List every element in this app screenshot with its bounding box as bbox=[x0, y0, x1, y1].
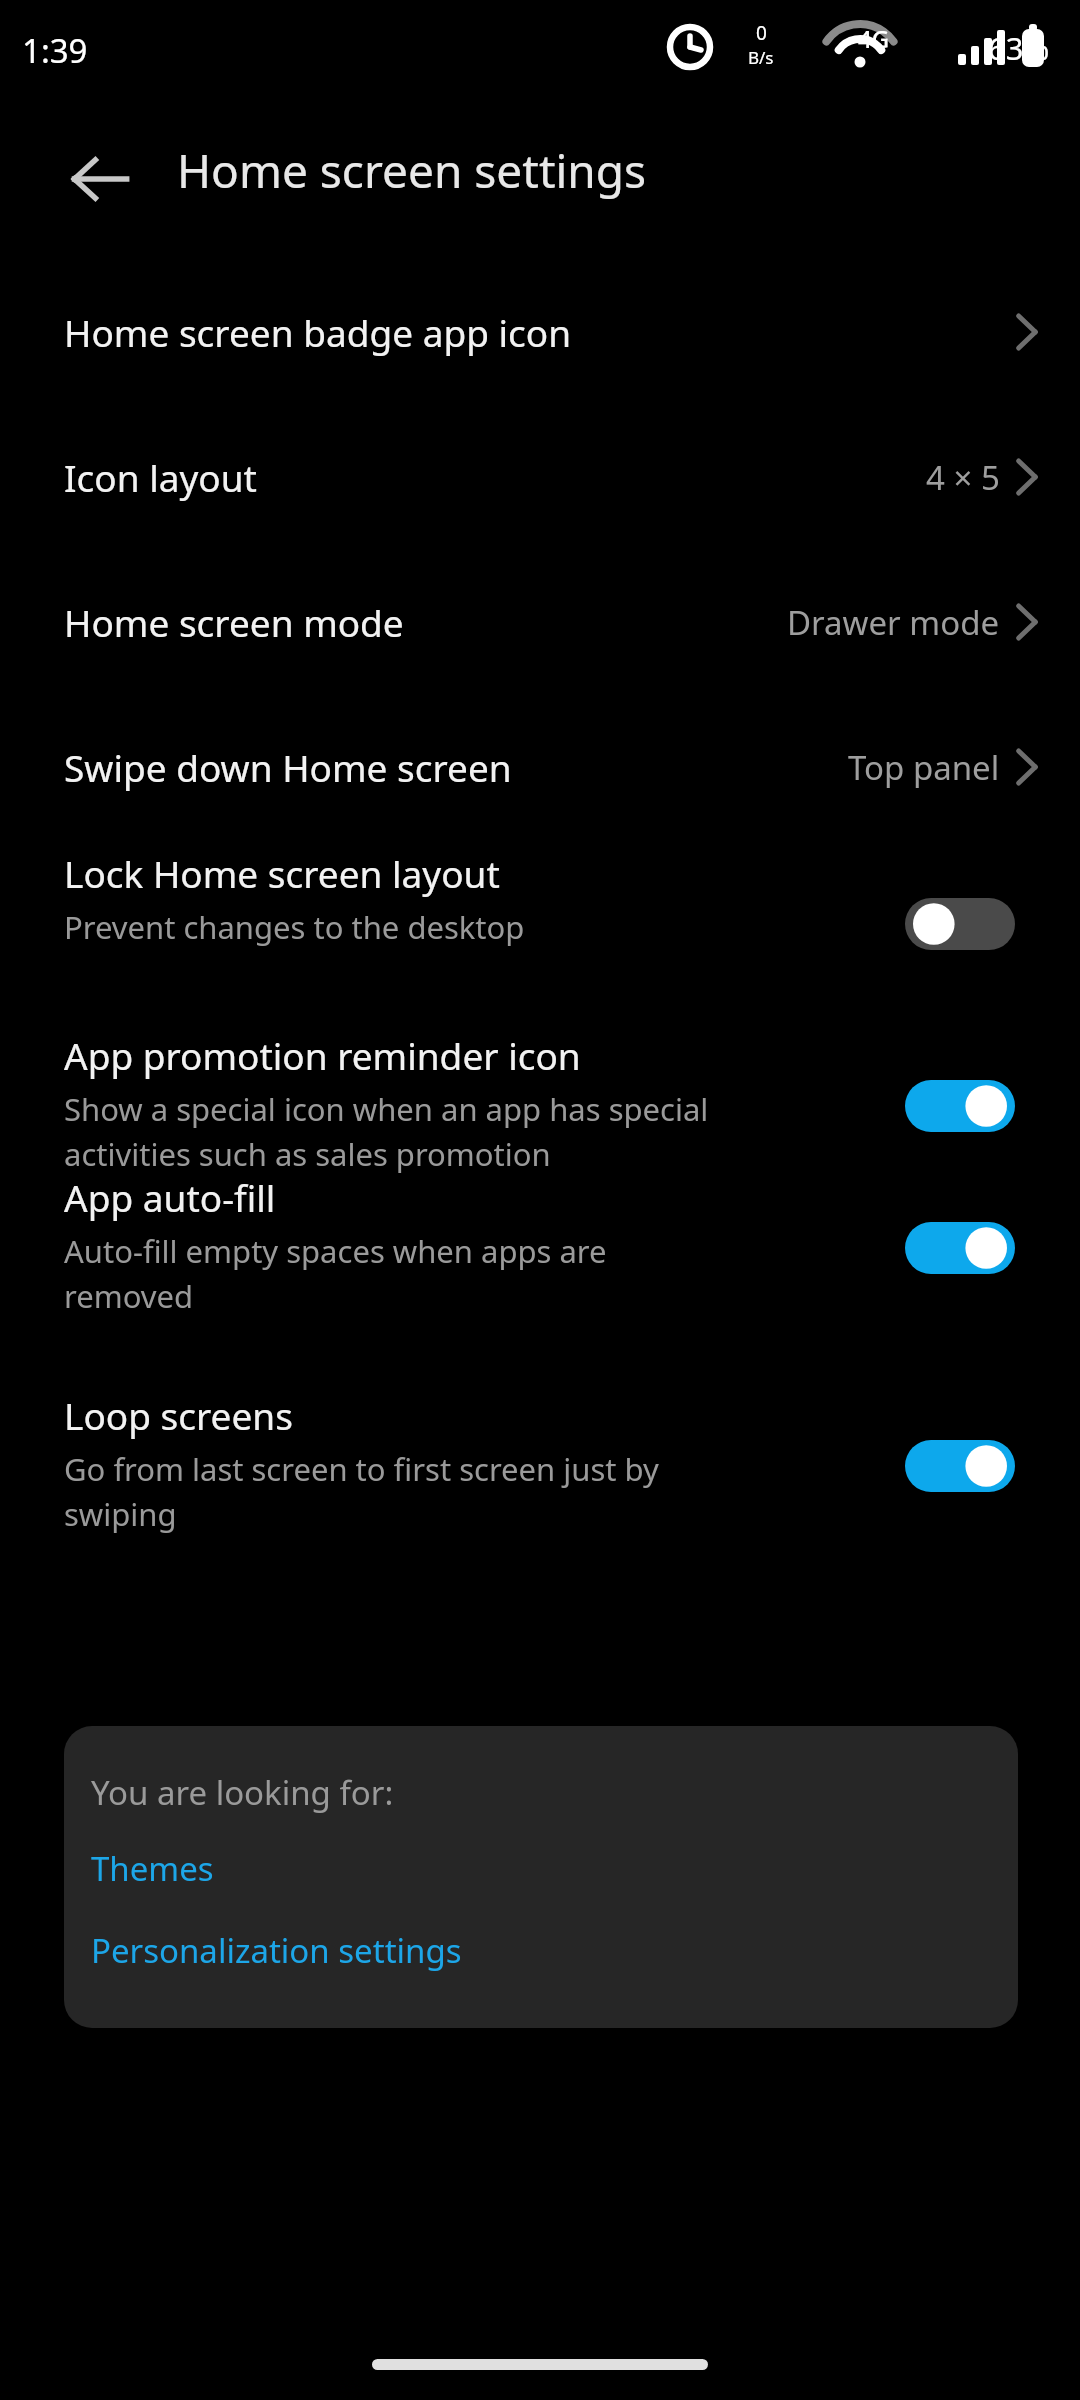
staticText: Prevent changes to the desktop bbox=[64, 906, 525, 948]
button[interactable]: Home screen mode bbox=[0, 567, 1080, 677]
staticText: Go from last screen to first screen just… bbox=[64, 1448, 659, 1535]
staticText: Swipe down Home screen bbox=[64, 742, 848, 792]
staticText: Loop screens bbox=[64, 1390, 293, 1440]
staticText: 4 × 5 bbox=[926, 455, 1000, 500]
staticText: Top panel bbox=[848, 745, 1000, 790]
button[interactable] bbox=[0, 1372, 1080, 1562]
button[interactable] bbox=[0, 1154, 1080, 1344]
staticText: Drawer mode bbox=[787, 600, 1000, 645]
staticText: Themes bbox=[91, 1846, 214, 1891]
staticText: 63% bbox=[988, 27, 1050, 69]
button[interactable]: On bbox=[905, 1222, 1015, 1274]
button[interactable]: Personalization settings bbox=[91, 1928, 462, 1973]
button[interactable]: Home screen badge app icon bbox=[0, 277, 1080, 387]
staticText: App auto-fill bbox=[64, 1172, 276, 1222]
button[interactable] bbox=[0, 1012, 1080, 1202]
staticText: Home screen badge app icon bbox=[64, 307, 1016, 357]
staticText: Home screen settings bbox=[177, 139, 647, 202]
staticText: 4G bbox=[858, 22, 890, 55]
button[interactable]: On bbox=[905, 1080, 1015, 1132]
staticText: Auto-fill empty spaces when apps are rem… bbox=[64, 1230, 607, 1317]
staticText: App promotion reminder icon bbox=[64, 1030, 581, 1080]
button[interactable]: Back bbox=[52, 131, 148, 227]
button[interactable]: Icon layout bbox=[0, 422, 1080, 532]
staticText: Icon layout bbox=[64, 452, 926, 502]
button[interactable]: Themes bbox=[91, 1846, 214, 1891]
staticText: 1:39 bbox=[22, 28, 88, 73]
button[interactable] bbox=[0, 830, 1080, 970]
button[interactable]: Off bbox=[905, 898, 1015, 950]
staticText: Lock Home screen layout bbox=[64, 848, 500, 898]
staticText: B/s bbox=[748, 46, 774, 69]
button[interactable]: Swipe down Home screen bbox=[0, 712, 1080, 822]
staticText: Home screen mode bbox=[64, 597, 787, 647]
staticText: Personalization settings bbox=[91, 1928, 462, 1973]
staticText: You are looking for: bbox=[91, 1770, 394, 1815]
staticText: 0 bbox=[756, 20, 767, 46]
staticText: Show a special icon when an app has spec… bbox=[64, 1088, 709, 1175]
button[interactable]: On bbox=[905, 1440, 1015, 1492]
